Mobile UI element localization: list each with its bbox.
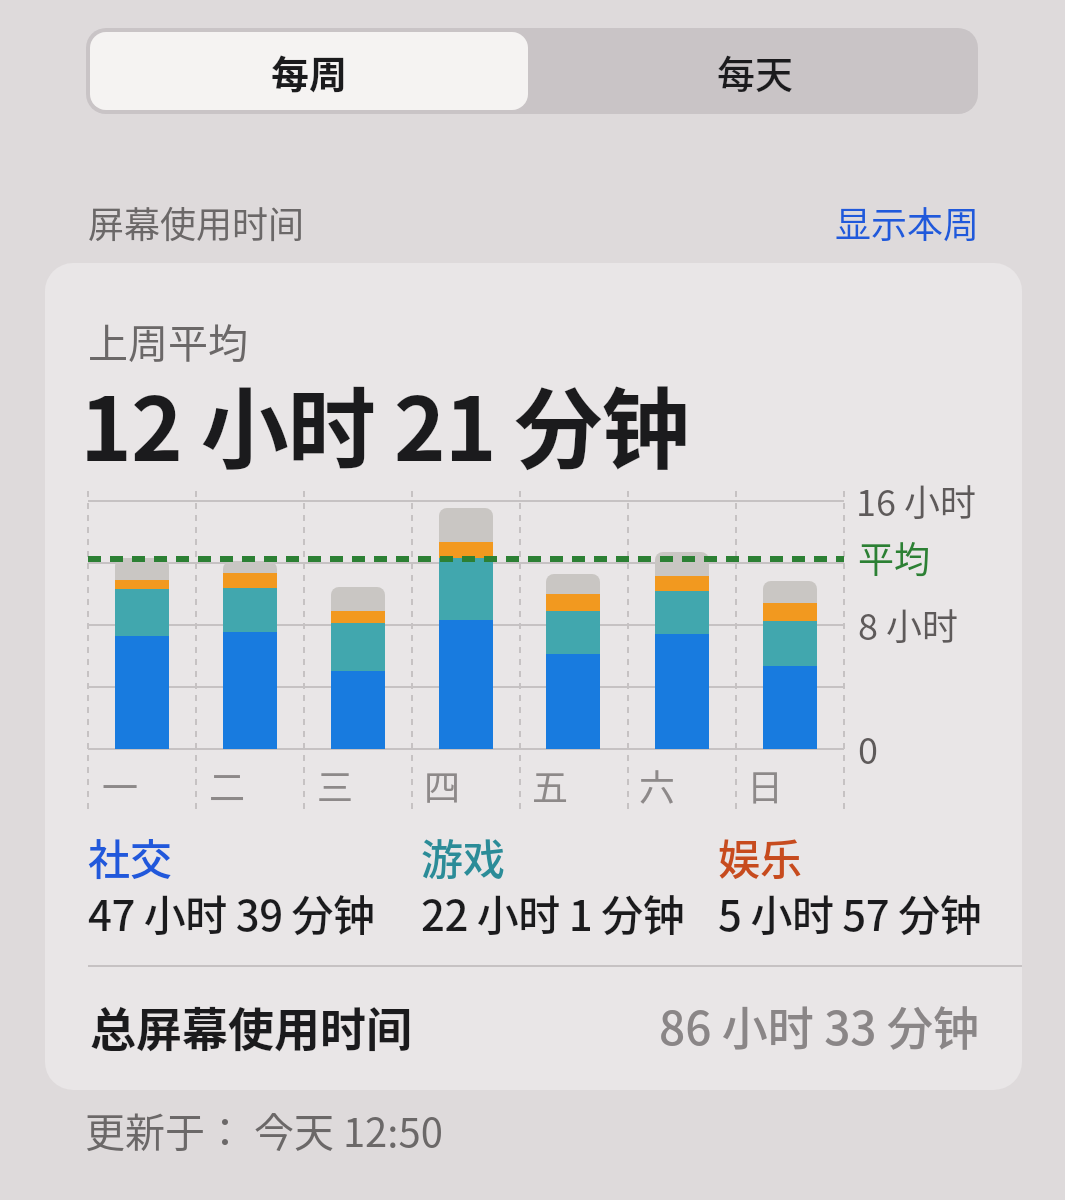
staticText: 总屏幕使用时间 xyxy=(90,993,412,1060)
staticText: 平均 xyxy=(858,531,931,583)
staticText: 三 xyxy=(317,759,354,811)
staticText: 0 xyxy=(858,722,878,774)
staticText: 5 小时 57 分钟 xyxy=(718,882,982,943)
staticText: 86 小时 33 分钟 xyxy=(659,992,979,1059)
staticText: 每天 xyxy=(717,44,794,99)
button[interactable]: 显示本周 xyxy=(810,196,980,248)
staticText: 一 xyxy=(102,759,139,811)
staticText: 22 小时 1 分钟 xyxy=(421,882,685,943)
staticText: 五 xyxy=(532,759,569,811)
staticText: 娱乐 xyxy=(718,826,803,887)
staticText: 每周 xyxy=(271,44,348,99)
staticText: 8 小时 xyxy=(858,598,959,650)
staticText: 16 小时 xyxy=(856,474,977,526)
staticText: 日 xyxy=(747,759,784,811)
staticText: 屏幕使用时间 xyxy=(88,196,305,248)
staticText: 显示本周 xyxy=(835,196,980,248)
staticText: 四 xyxy=(424,759,461,811)
staticText: 社交 xyxy=(88,826,173,887)
button[interactable]: 每周 xyxy=(90,32,528,110)
button[interactable]: 每天 xyxy=(532,28,978,114)
staticText: 六 xyxy=(639,759,676,811)
staticText: 47 小时 39 分钟 xyxy=(88,882,375,943)
staticText: 上周平均 xyxy=(88,312,248,370)
staticText: 二 xyxy=(209,759,246,811)
staticText: 游戏 xyxy=(421,826,506,887)
staticText: 更新于： 今天 12:50 xyxy=(85,1101,443,1159)
staticText: 12 小时 21 分钟 xyxy=(80,359,689,486)
